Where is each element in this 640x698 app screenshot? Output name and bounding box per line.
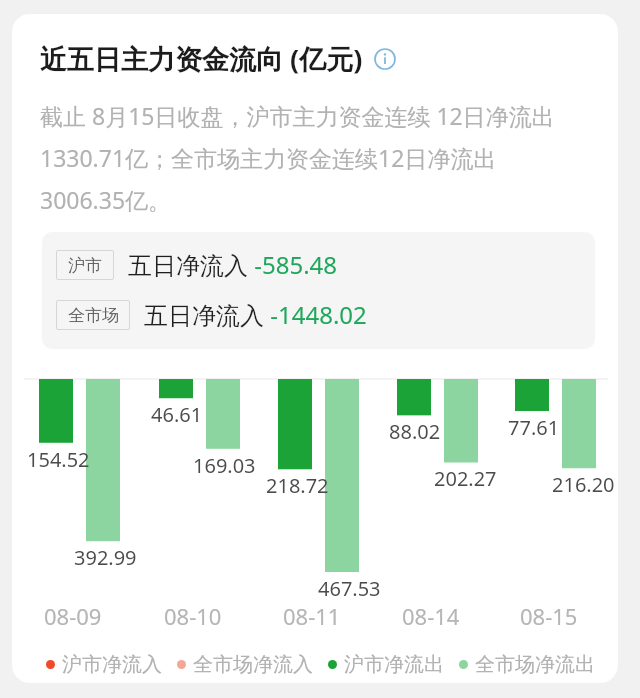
staticText: 近五日主力资金流向 (亿元) [40, 40, 363, 77]
staticText: 全市场净流出 [475, 652, 595, 677]
staticText: 全市场净流入 [193, 652, 313, 677]
staticText: 沪市净流入 [62, 652, 162, 677]
button[interactable]: 全市场净流出 [459, 652, 595, 677]
staticText: 202.27 [434, 465, 497, 492]
staticText: 169.03 [193, 452, 256, 479]
staticText: 08-09 [44, 601, 102, 631]
button[interactable]: 沪市净流出 [328, 652, 444, 677]
staticText: 392.99 [74, 544, 137, 571]
staticText: 08-10 [164, 601, 222, 631]
staticText: 1330.71亿；全市场主力资金连续12日净流出 [40, 142, 497, 173]
button[interactable]: 全市场 [56, 298, 367, 331]
staticText: 截止 8月15日收盘，沪市主力资金连续 12日净流出 [40, 100, 555, 131]
staticText: 五日净流入 -585.48 [128, 248, 338, 281]
staticText: 218.72 [266, 472, 329, 499]
button[interactable]: 全市场净流入 [177, 652, 313, 677]
staticText: 46.61 [151, 401, 203, 428]
staticText: 沪市净流出 [344, 652, 444, 677]
staticText: 77.61 [508, 414, 560, 441]
staticText: 08-15 [520, 601, 578, 631]
staticText: 沪市 [68, 255, 102, 276]
staticText: 全市场 [68, 305, 119, 326]
button[interactable]: 沪市 [56, 248, 338, 281]
button[interactable]: 说明 [372, 46, 398, 72]
staticText: 216.20 [552, 471, 615, 498]
staticText: 08-14 [402, 601, 460, 631]
staticText: 154.52 [27, 446, 90, 473]
staticText: 五日净流入 -1448.02 [144, 298, 367, 331]
staticText: 88.02 [389, 418, 441, 445]
staticText: 08-11 [283, 601, 341, 631]
button[interactable]: 沪市净流入 [46, 652, 162, 677]
staticText: 3006.35亿。 [40, 184, 172, 215]
staticText: 467.53 [318, 575, 381, 602]
